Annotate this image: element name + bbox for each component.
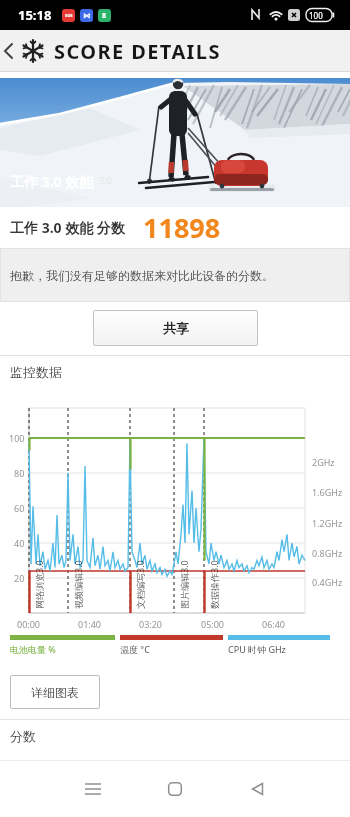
staticText: 100 xyxy=(309,10,323,21)
staticText: 监控数据 xyxy=(10,364,62,380)
staticText: 共享 xyxy=(163,320,189,336)
staticText: SCORE DETAILS xyxy=(54,38,221,65)
button[interactable] xyxy=(147,769,203,809)
button[interactable]: 详细图表 xyxy=(10,675,100,709)
button[interactable]: SCORE DETAILS xyxy=(0,30,350,72)
button[interactable]: 共享 xyxy=(93,310,258,346)
staticText: 详细图表 xyxy=(31,685,79,700)
staticText: ⋈ xyxy=(83,12,90,20)
staticText: 8 xyxy=(102,11,107,21)
staticText: CPU 时钟 GHz xyxy=(228,643,286,655)
staticText: 11898 xyxy=(143,209,221,246)
button[interactable] xyxy=(65,769,121,809)
staticText: 工作 3.0 效能 分数 xyxy=(10,218,125,237)
staticText: SOS xyxy=(65,13,73,18)
button[interactable] xyxy=(229,769,285,809)
staticText: 温度 °C xyxy=(120,643,150,655)
staticText: 分数 xyxy=(10,728,36,744)
staticText: 电池电量 % xyxy=(10,643,56,655)
staticText: 抱歉，我们没有足够的数据来对比此设备的分数。 xyxy=(10,268,274,283)
staticText: 工作 3.0 效能 xyxy=(10,172,94,191)
staticText: 15:18 xyxy=(18,6,52,24)
staticText: 3.0 xyxy=(99,174,112,186)
